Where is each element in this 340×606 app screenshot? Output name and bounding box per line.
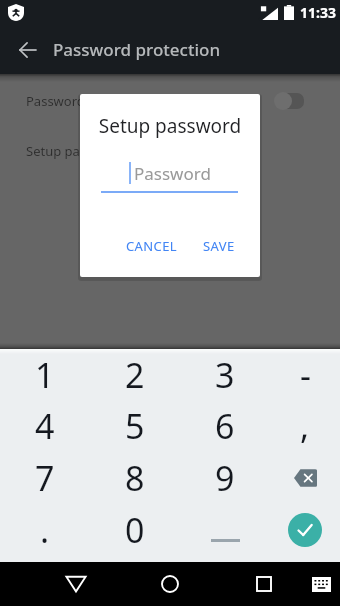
button[interactable]: 8 bbox=[90, 452, 180, 504]
button[interactable]: Backspace bbox=[270, 452, 340, 504]
button[interactable]: Password protection bbox=[0, 76, 340, 126]
button[interactable]: SAVE bbox=[197, 231, 241, 261]
button[interactable]: 1 bbox=[0, 349, 90, 400]
button[interactable]: 9 bbox=[180, 452, 270, 504]
staticText: . bbox=[40, 507, 50, 553]
staticText: 1 bbox=[35, 352, 55, 398]
button[interactable]: 5 bbox=[90, 400, 180, 452]
staticText: 2 bbox=[125, 352, 145, 398]
staticText: Password protection bbox=[26, 92, 152, 110]
button[interactable]: 7 bbox=[0, 452, 90, 504]
staticText: 8 bbox=[125, 455, 145, 501]
button[interactable]: Recent apps bbox=[242, 562, 286, 606]
staticText: 4 bbox=[35, 403, 55, 449]
staticText: SAVE bbox=[203, 237, 235, 255]
button[interactable]: Space bbox=[180, 504, 270, 562]
button[interactable]: Switch keyboard bbox=[299, 562, 340, 606]
staticText: Setup password bbox=[80, 113, 260, 139]
button[interactable]: 0 bbox=[90, 504, 180, 562]
button[interactable]: Done bbox=[270, 504, 340, 562]
button[interactable]: Setup password bbox=[0, 126, 340, 176]
staticText: CANCEL bbox=[126, 237, 178, 255]
staticText: Password protection bbox=[53, 38, 221, 61]
button[interactable]: 4 bbox=[0, 400, 90, 452]
staticText: 0 bbox=[125, 507, 145, 553]
button[interactable]: 6 bbox=[180, 400, 270, 452]
staticText: 5 bbox=[125, 403, 145, 449]
button[interactable]: 2 bbox=[90, 349, 180, 400]
button[interactable]: CANCEL bbox=[120, 231, 184, 261]
button[interactable]: Home bbox=[148, 562, 192, 606]
button[interactable]: . bbox=[0, 504, 90, 562]
button[interactable]: - bbox=[270, 349, 340, 400]
button[interactable]: 3 bbox=[180, 349, 270, 400]
staticText: , bbox=[300, 403, 310, 449]
staticText: 7 bbox=[35, 455, 55, 501]
staticText: 6 bbox=[215, 403, 235, 449]
staticText: 9 bbox=[215, 455, 235, 501]
button[interactable]: Navigate up bbox=[10, 32, 46, 68]
staticText: Password bbox=[134, 162, 211, 184]
staticText: 11:33 bbox=[300, 3, 336, 22]
button[interactable]: Back bbox=[54, 562, 98, 606]
staticText: 3 bbox=[215, 352, 235, 398]
button[interactable]: , bbox=[270, 400, 340, 452]
staticText: Setup password bbox=[26, 142, 124, 160]
staticText: - bbox=[300, 352, 311, 398]
